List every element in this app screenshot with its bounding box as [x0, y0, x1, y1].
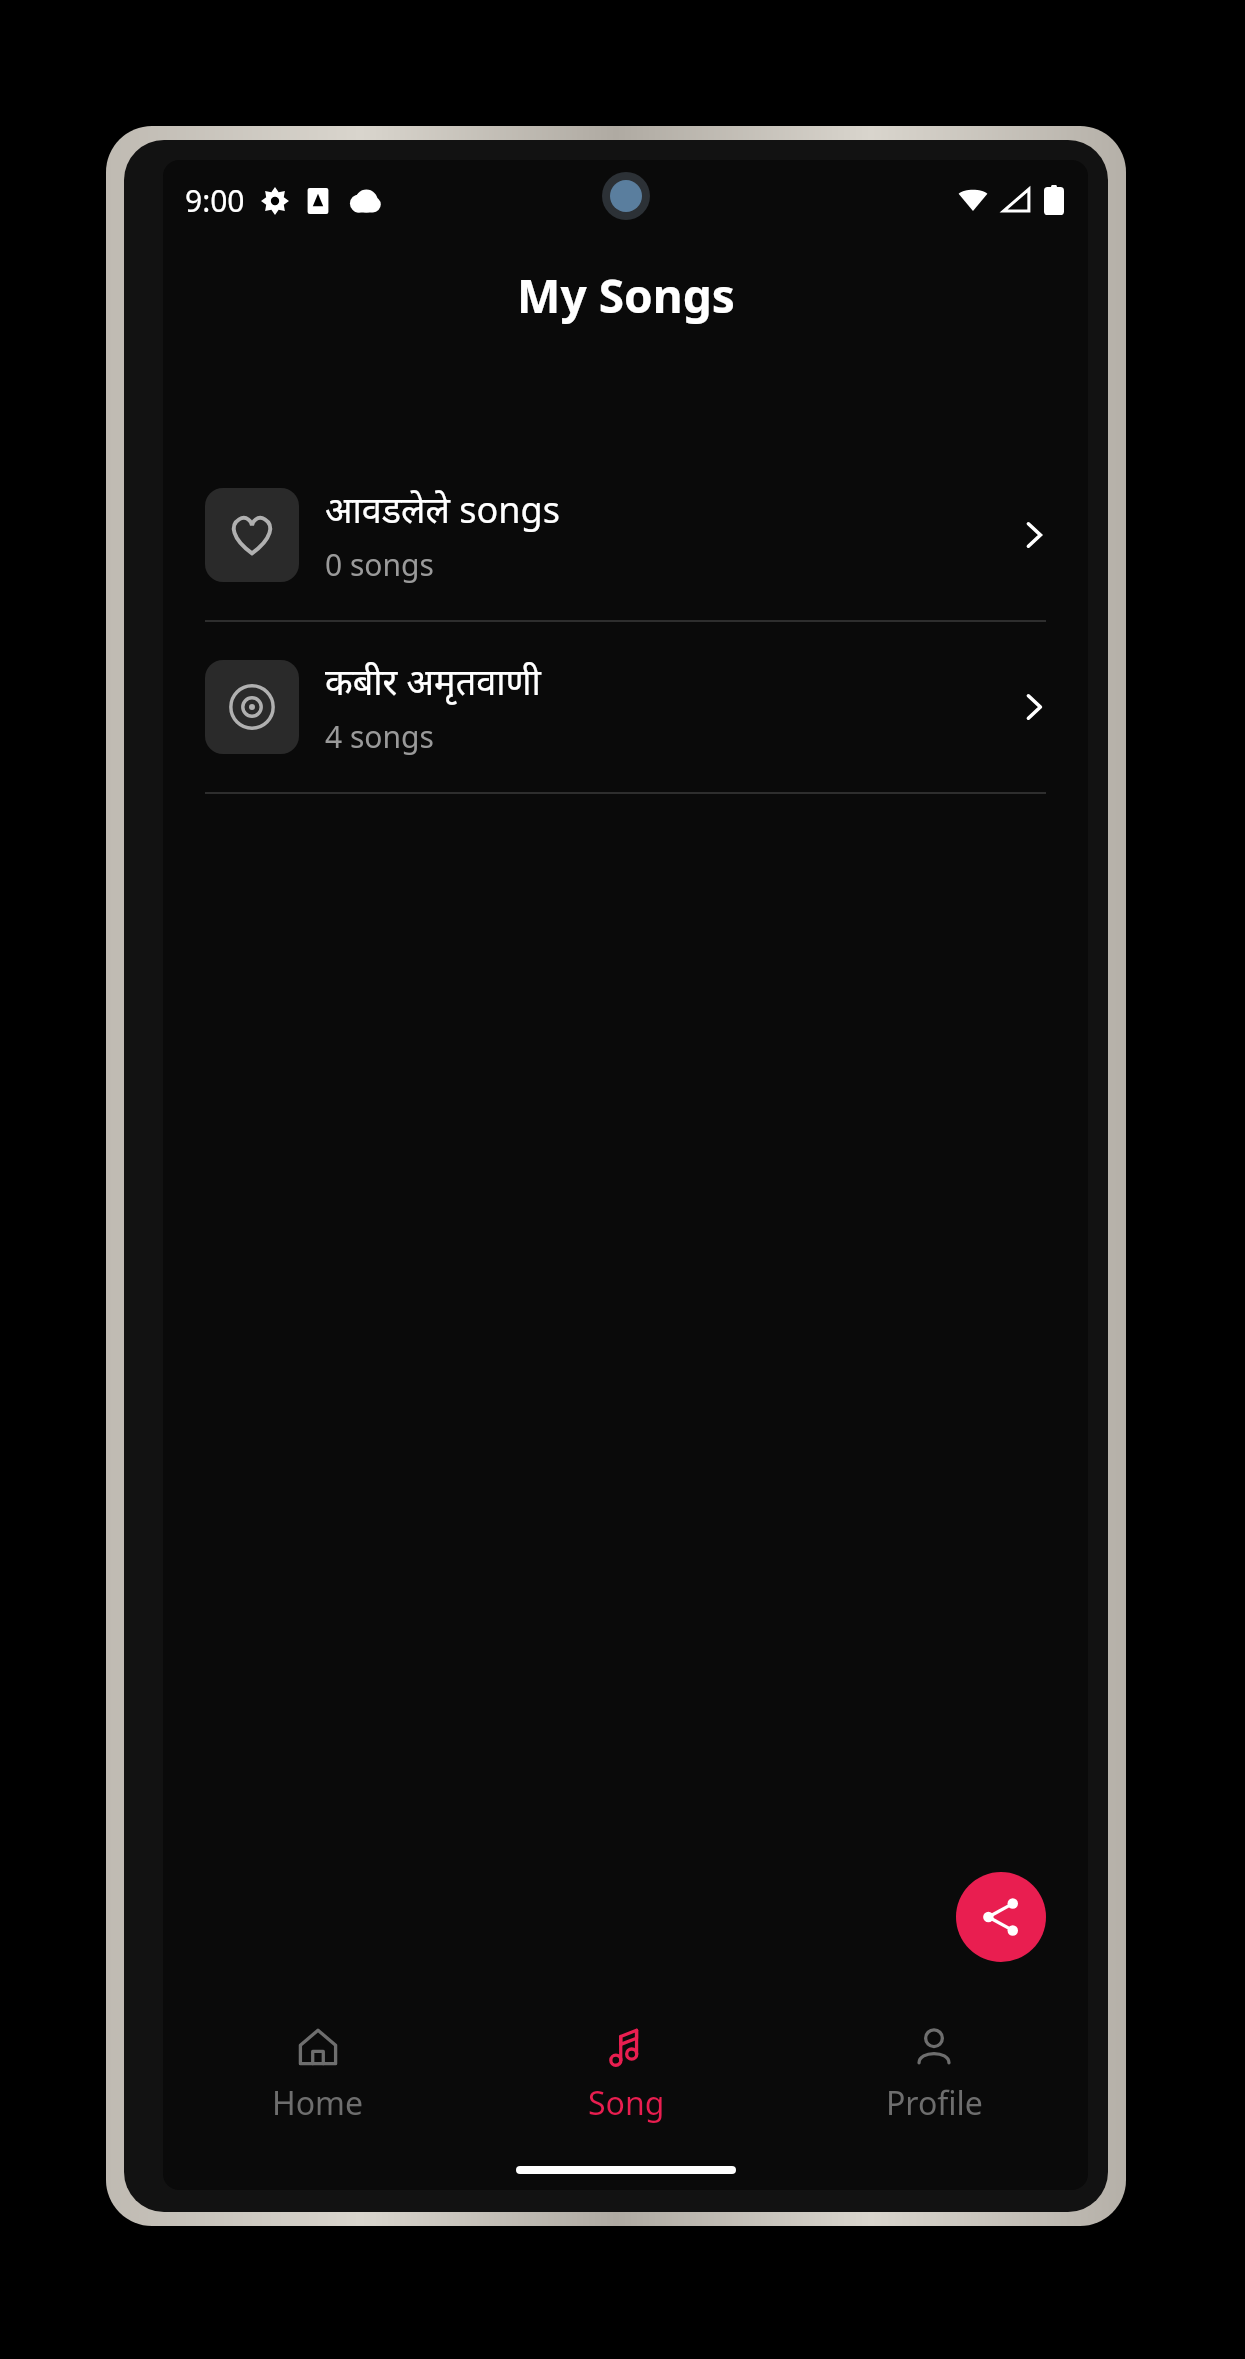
- button[interactable]: Profile: [780, 2000, 1088, 2150]
- button[interactable]: कबीर अमृतवाणी: [163, 622, 1088, 792]
- button[interactable]: आवडलेले songs: [163, 450, 1088, 620]
- staticText: Profile: [886, 2081, 983, 2125]
- button[interactable]: Share: [956, 1872, 1046, 1962]
- staticText: 0 songs: [325, 544, 434, 585]
- staticText: 4 songs: [325, 716, 434, 757]
- staticText: My Songs: [517, 264, 735, 327]
- staticText: कबीर अमृतवाणी: [325, 657, 541, 706]
- button[interactable]: Song: [472, 2000, 780, 2150]
- staticText: Song: [588, 2081, 665, 2125]
- staticText: आवडलेले songs: [325, 485, 560, 534]
- button[interactable]: Home: [163, 2000, 472, 2150]
- staticText: Home: [272, 2081, 364, 2125]
- staticText: 9:00: [185, 180, 245, 221]
